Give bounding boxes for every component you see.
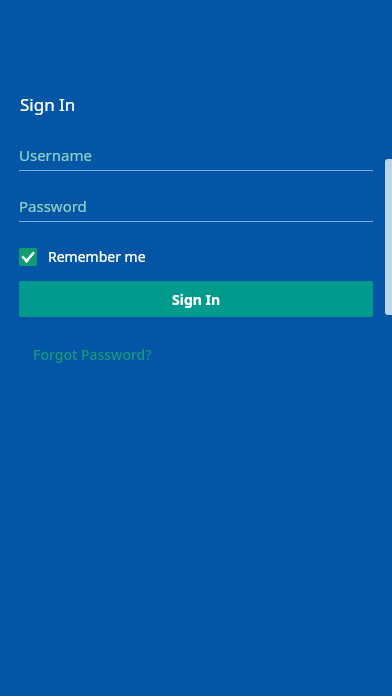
staticText: Password bbox=[19, 196, 87, 216]
staticText: Remember me bbox=[48, 247, 146, 266]
staticText: Username bbox=[19, 145, 92, 165]
staticText: Sign In bbox=[20, 93, 76, 116]
button[interactable]: Username bbox=[19, 145, 373, 171]
staticText: Sign In bbox=[172, 290, 221, 309]
button[interactable]: Sign In bbox=[19, 281, 373, 317]
button[interactable]: Forgot Password? bbox=[27, 342, 158, 367]
button[interactable]: Remember me bbox=[19, 245, 156, 268]
other: Scroll position bbox=[385, 159, 392, 315]
staticText: Forgot Password? bbox=[33, 345, 152, 364]
button[interactable]: Password bbox=[19, 196, 373, 222]
